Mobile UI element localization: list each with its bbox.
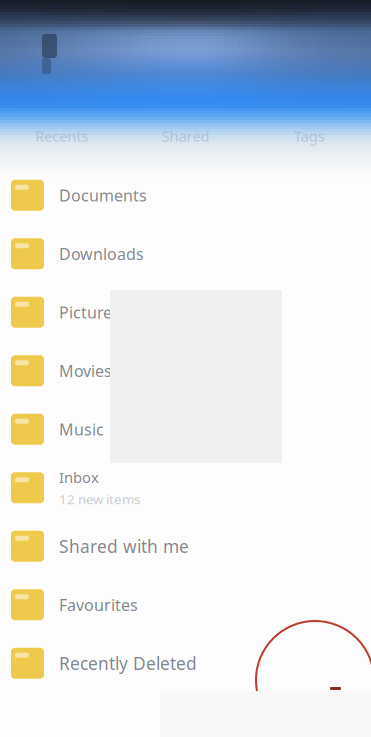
button[interactable]: Shared [124,128,247,144]
staticText: Favourites [59,594,138,615]
staticText: Downloads [59,243,144,264]
staticText: Recently Deleted [59,652,197,675]
staticText: Recents [35,126,88,146]
button[interactable]: Recently Deleted [0,634,371,692]
staticText: Tags [294,126,325,146]
staticText: Documents [59,185,147,206]
button[interactable]: Pictures [0,283,371,341]
staticText: Shared with me [59,535,189,558]
button[interactable]: Shared with me [0,517,371,575]
button[interactable]: Documents [0,166,371,224]
staticText: Inbox [59,468,99,487]
button[interactable]: Downloads [0,224,371,283]
button[interactable]: Music [0,400,371,458]
staticText: Music [59,419,104,440]
staticText: Shared [161,126,209,146]
button[interactable]: Favourites [0,575,371,634]
staticText: Pictures [59,302,120,323]
button[interactable]: Movies [0,341,371,400]
staticText: 12 new items [59,490,140,508]
button[interactable]: Inbox [0,458,371,517]
button[interactable]: Tags [247,128,371,144]
button[interactable]: Recents [0,128,124,144]
staticText: Movies [59,360,112,381]
